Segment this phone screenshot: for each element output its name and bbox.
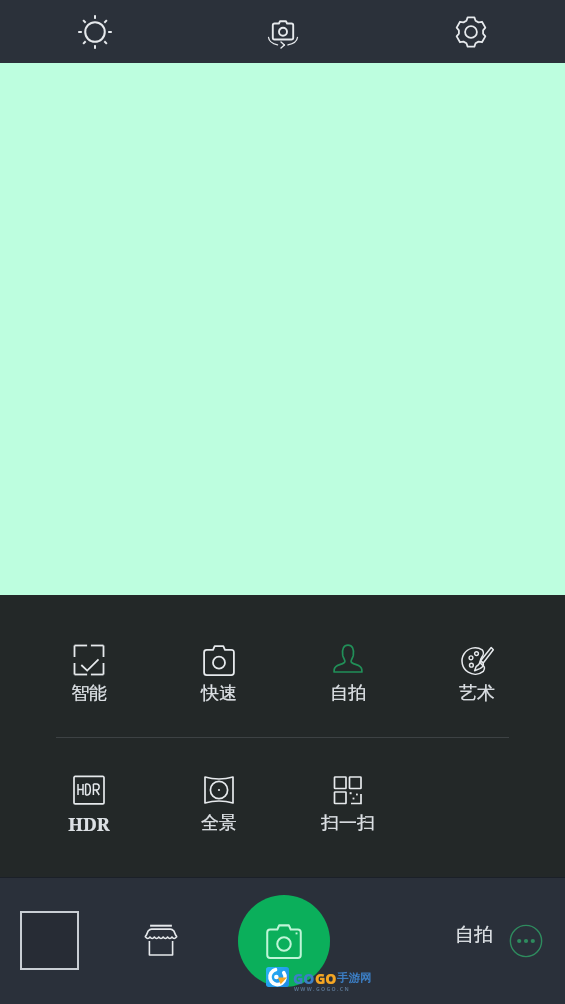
button[interactable]: Shutter xyxy=(238,895,330,987)
staticText: HDR xyxy=(68,812,110,837)
staticText: GO xyxy=(293,969,315,988)
staticText: 自拍 xyxy=(330,682,366,705)
button[interactable]: Switch camera xyxy=(189,0,377,63)
staticText: W W W . G O G O . C N xyxy=(294,985,349,992)
button[interactable]: 自拍 xyxy=(283,642,412,705)
staticText: 手游网 xyxy=(337,971,372,985)
button[interactable]: HDR xyxy=(24,772,154,837)
staticText: 自拍 xyxy=(455,923,493,947)
staticText: 艺术 xyxy=(459,682,495,705)
button[interactable]: More options xyxy=(509,924,543,958)
staticText: 快速 xyxy=(201,682,237,705)
staticText: 扫一扫 xyxy=(321,812,375,835)
button[interactable]: Settings xyxy=(377,0,565,63)
button[interactable]: 快速 xyxy=(154,642,283,705)
button[interactable]: 全景 xyxy=(154,772,283,835)
button[interactable]: 扫一扫 xyxy=(283,772,412,835)
staticText: 全景 xyxy=(201,812,237,835)
button[interactable]: 智能 xyxy=(24,642,154,705)
button[interactable]: 自拍 xyxy=(455,923,493,947)
button[interactable]: Gallery xyxy=(20,911,79,970)
button[interactable]: 艺术 xyxy=(412,642,541,705)
staticText: GO xyxy=(315,969,337,988)
button[interactable]: Sticker store xyxy=(133,910,189,960)
staticText: 智能 xyxy=(71,682,107,705)
button[interactable]: Brightness xyxy=(0,0,189,63)
